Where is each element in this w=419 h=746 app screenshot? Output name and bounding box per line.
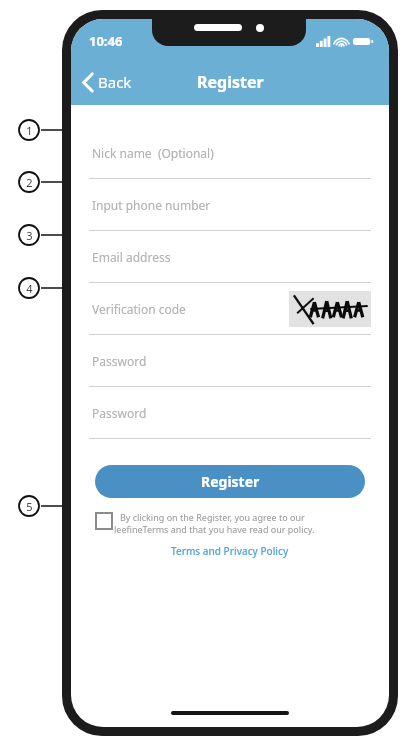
button[interactable]: Nick name (Optional) [71,127,389,179]
button[interactable]: Password [71,387,389,439]
button[interactable]: Back [71,66,144,98]
staticText: Email address [92,249,171,265]
button[interactable]: Accept terms checkbox [95,511,369,535]
staticText: 4 [26,281,33,296]
button[interactable]: Verification code [71,283,389,335]
staticText: 2 [26,175,33,190]
staticText: Password [92,353,147,369]
staticText: 3 [26,228,33,243]
button[interactable]: Input phone number [71,179,389,231]
button[interactable]: Password [71,335,389,387]
button[interactable]: Terms and Privacy Policy [165,542,295,560]
staticText: Nick name (Optional) [92,145,214,161]
staticText: Register [201,472,260,491]
other: Verification code image [289,291,371,327]
staticText: Register [197,71,264,93]
staticText: 1 [26,123,33,138]
staticText: Input phone number [92,197,211,213]
staticText: Back [98,72,132,92]
staticText: 10:46 [89,32,123,50]
staticText: Password [92,405,147,421]
other: Accept terms checkbox [95,512,113,530]
staticText: Verification code [92,301,186,317]
staticText: 5 [26,499,33,514]
staticText: leefineTerms and that you have read our … [114,523,315,535]
staticText: By clicking on the Register, you agree t… [120,511,305,523]
button[interactable]: Register [95,465,365,498]
button[interactable]: Email address [71,231,389,283]
